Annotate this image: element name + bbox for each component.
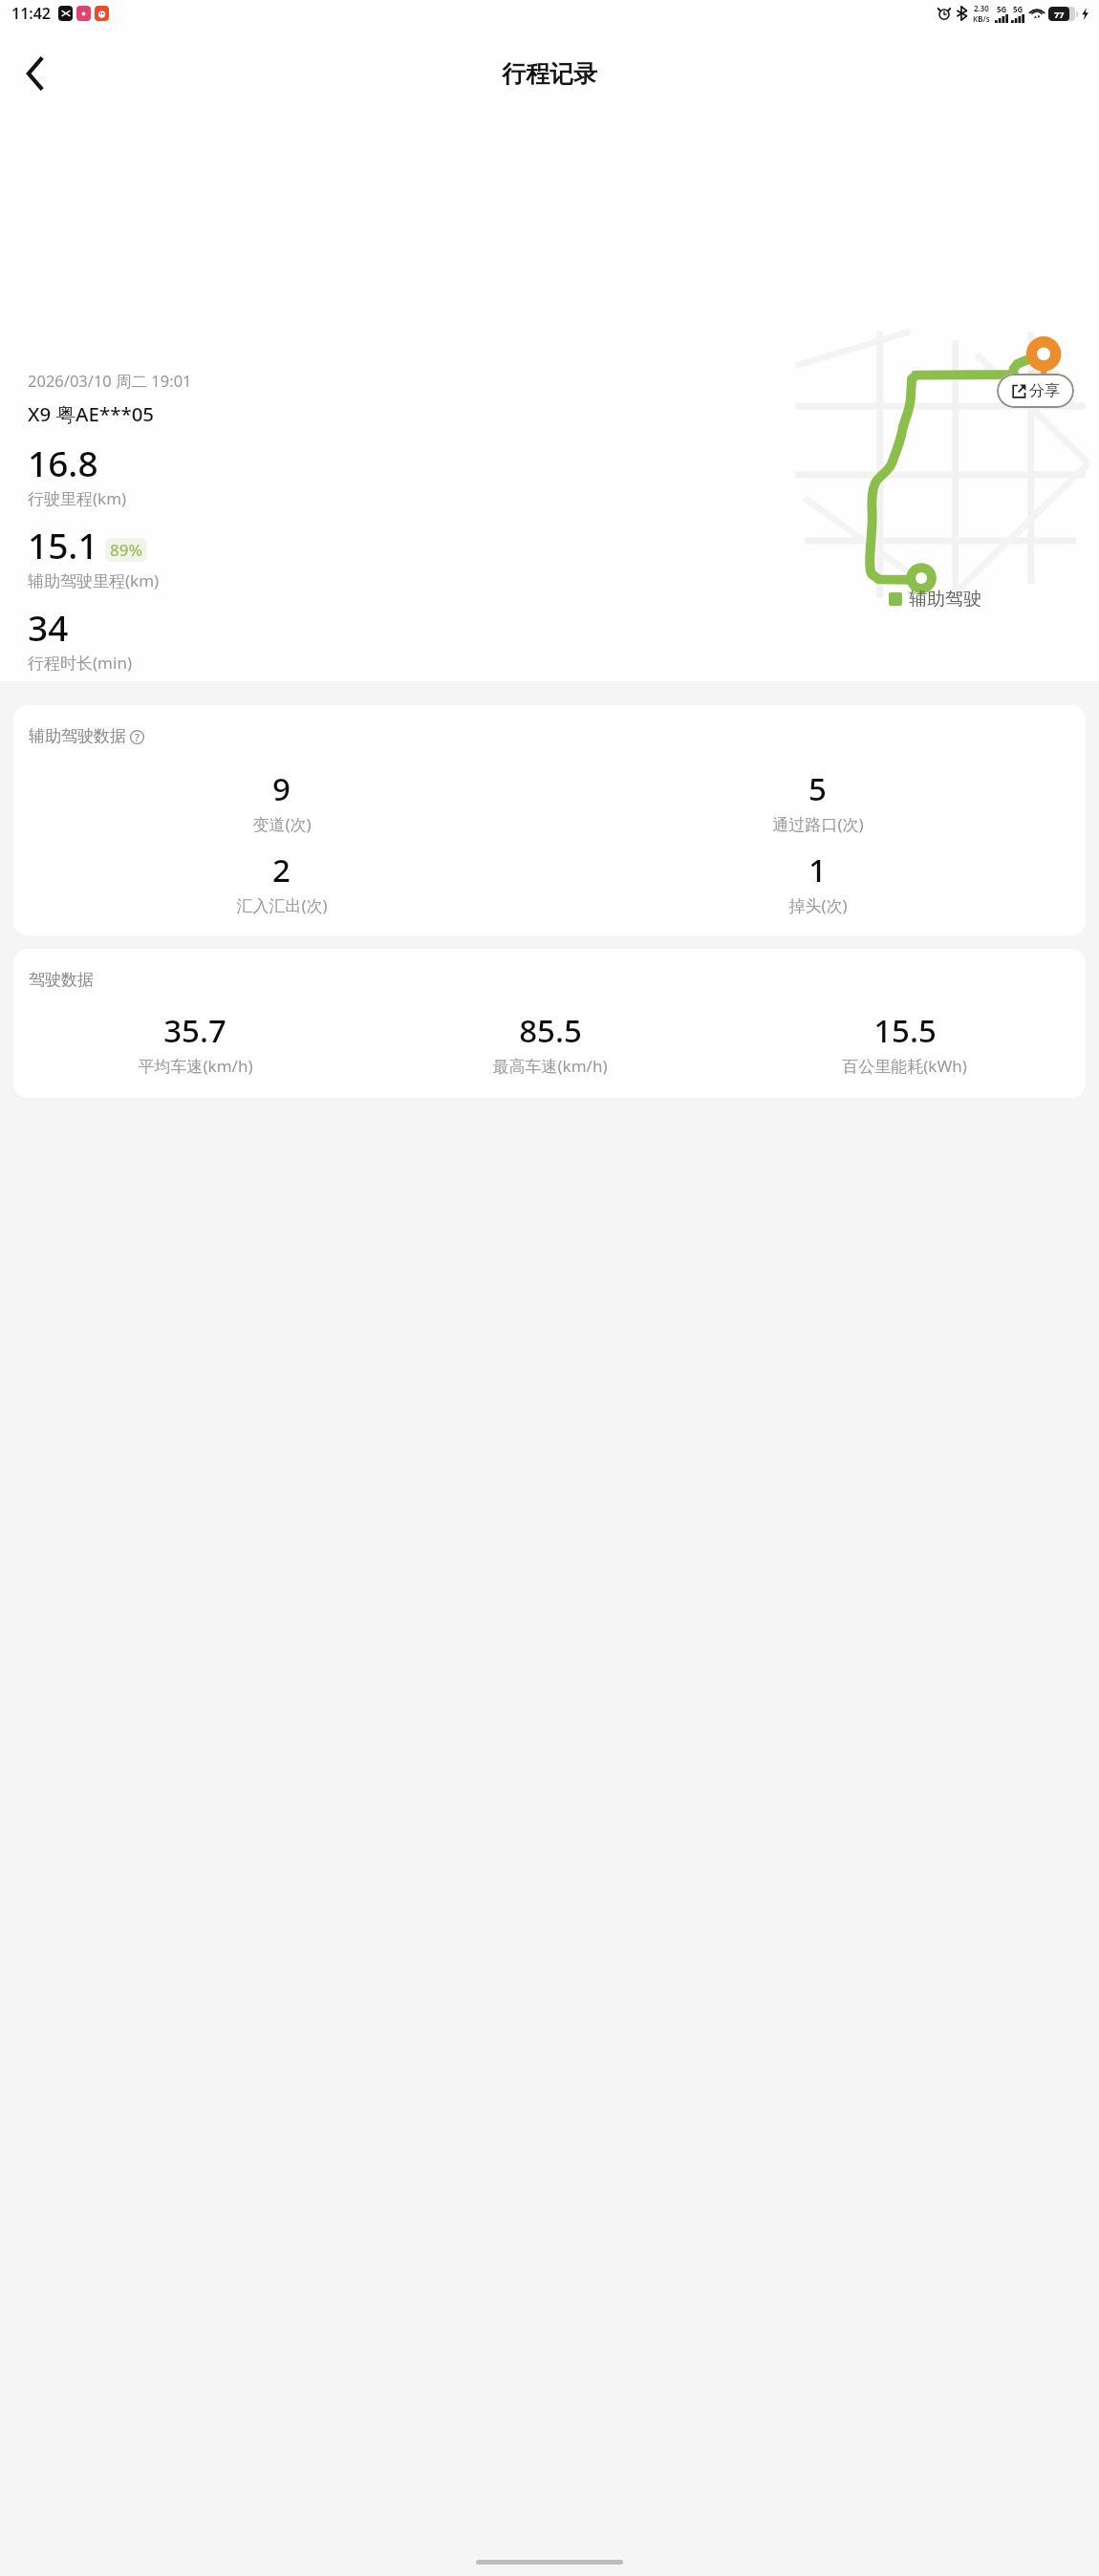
staticText: 汇入汇出(次) bbox=[236, 894, 328, 916]
staticText: 5 bbox=[808, 767, 827, 810]
staticText: 89% bbox=[110, 539, 142, 561]
staticText: 15.1 bbox=[28, 521, 98, 569]
staticText: 行程时长(min) bbox=[28, 652, 132, 674]
staticText: 百公里能耗(kWh) bbox=[842, 1055, 967, 1077]
staticText: 最高车速(km/h) bbox=[492, 1055, 608, 1077]
staticText: 1 bbox=[808, 848, 827, 891]
button[interactable]: 帮助 bbox=[128, 728, 145, 745]
staticText: KB/s bbox=[973, 13, 990, 24]
staticText: 5G bbox=[997, 4, 1007, 14]
staticText: 16.8 bbox=[28, 439, 98, 486]
staticText: 2026/03/10 周二 19:01 bbox=[28, 370, 192, 392]
staticText: 77 bbox=[1054, 9, 1065, 20]
staticText: 行程记录 bbox=[502, 59, 597, 89]
staticText: 辅助驾驶数据 bbox=[29, 726, 126, 746]
staticText: 平均车速(km/h) bbox=[138, 1055, 253, 1077]
staticText: 2.30 bbox=[974, 3, 989, 13]
staticText: 掉头(次) bbox=[788, 894, 848, 916]
staticText: 行驶里程(km) bbox=[28, 487, 127, 509]
staticText: 辅助驾驶 bbox=[909, 588, 981, 611]
staticText: 11:42 bbox=[11, 3, 52, 24]
staticText: 9 bbox=[272, 767, 291, 810]
button[interactable]: 分享 bbox=[997, 374, 1074, 408]
staticText: X9 粤AE***05 bbox=[28, 400, 155, 427]
staticText: 分享 bbox=[1029, 381, 1060, 400]
staticText: 34 bbox=[28, 603, 69, 651]
staticText: 变道(次) bbox=[252, 813, 312, 835]
staticText: 15.5 bbox=[873, 1009, 937, 1052]
staticText: 驾驶数据 bbox=[29, 970, 94, 990]
staticText: 85.5 bbox=[519, 1009, 582, 1052]
staticText: 辅助驾驶里程(km) bbox=[28, 569, 160, 591]
staticText: 通过路口(次) bbox=[772, 813, 864, 835]
staticText: 35.7 bbox=[163, 1009, 226, 1052]
staticText: 2 bbox=[272, 848, 291, 891]
staticText: ? bbox=[135, 730, 140, 744]
button[interactable]: Back bbox=[8, 47, 61, 100]
staticText: 5G bbox=[1013, 4, 1024, 14]
